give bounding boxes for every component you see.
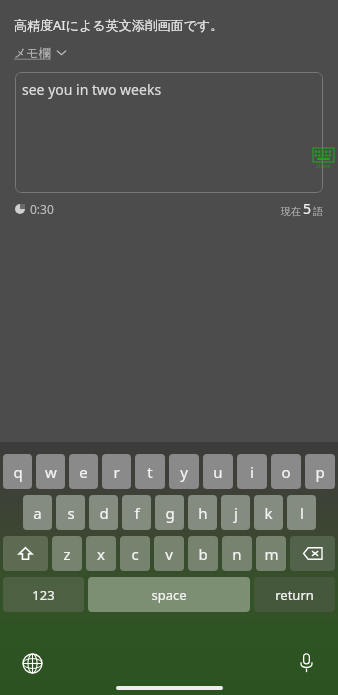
button[interactable]: g [155,495,184,530]
staticText: space [151,586,187,604]
button[interactable]: b [188,536,218,571]
button[interactable]: see you in two weeks [15,72,323,193]
staticText: a [33,503,42,523]
button[interactable]: j [221,495,250,530]
button[interactable]: q [3,454,32,489]
button[interactable]: k [254,495,283,530]
button[interactable]: Backspace [290,536,335,571]
staticText: k [264,503,273,523]
staticText: 5 [303,199,312,218]
button[interactable]: f [122,495,151,530]
staticText: q [13,462,23,482]
button[interactable]: 123 [3,577,84,612]
staticText: r [113,462,120,482]
button[interactable]: c [120,536,150,571]
staticText: 現在 [281,205,301,218]
staticText: n [232,544,242,564]
button[interactable]: s [56,495,85,530]
button[interactable]: a [23,495,52,530]
staticText: 高精度AIによる英文添削画面です。 [14,16,224,34]
button[interactable]: Close keyboard [313,148,334,170]
staticText: g [165,503,175,523]
button[interactable]: m [256,536,286,571]
button[interactable]: x [86,536,116,571]
button[interactable]: r [102,454,131,489]
button[interactable]: e [69,454,98,489]
staticText: メモ欄 [14,45,51,60]
staticText: x [97,544,105,564]
button[interactable]: h [188,495,217,530]
staticText: o [281,462,291,482]
button[interactable]: メモ欄 [14,45,67,60]
staticText: 語 [313,205,323,218]
staticText: 123 [32,586,55,604]
staticText: see you in two weeks [22,80,162,99]
button[interactable]: t [135,454,165,489]
button[interactable]: n [222,536,252,571]
staticText: p [315,462,325,482]
staticText: u [213,462,223,482]
button[interactable]: p [305,454,335,489]
button[interactable]: z [52,536,82,571]
button[interactable]: return [254,577,335,612]
staticText: m [264,544,279,564]
button[interactable]: u [203,454,233,489]
staticText: h [198,503,208,523]
staticText: w [45,462,57,482]
staticText: j [234,503,238,523]
button[interactable]: d [89,495,118,530]
button[interactable]: i [237,454,267,489]
staticText: d [99,503,109,523]
button[interactable]: w [36,454,65,489]
staticText: c [131,544,139,564]
button[interactable]: Shift [3,536,48,571]
staticText: close [316,162,331,170]
button[interactable]: y [169,454,199,489]
button[interactable]: v [154,536,184,571]
staticText: y [180,462,188,482]
button[interactable]: space [88,577,250,612]
button[interactable]: Voice input [291,648,321,678]
staticText: b [198,544,208,564]
staticText: z [63,544,71,564]
button[interactable]: Change language [17,648,47,678]
button[interactable]: o [271,454,301,489]
staticText: e [79,462,88,482]
staticText: s [67,503,75,523]
button[interactable]: l [287,495,316,530]
staticText: 0:30 [30,201,54,217]
staticText: i [250,462,254,482]
staticText: f [134,503,140,523]
staticText: v [165,544,173,564]
staticText: return [275,586,314,604]
staticText: l [300,503,304,523]
staticText: t [147,462,153,482]
